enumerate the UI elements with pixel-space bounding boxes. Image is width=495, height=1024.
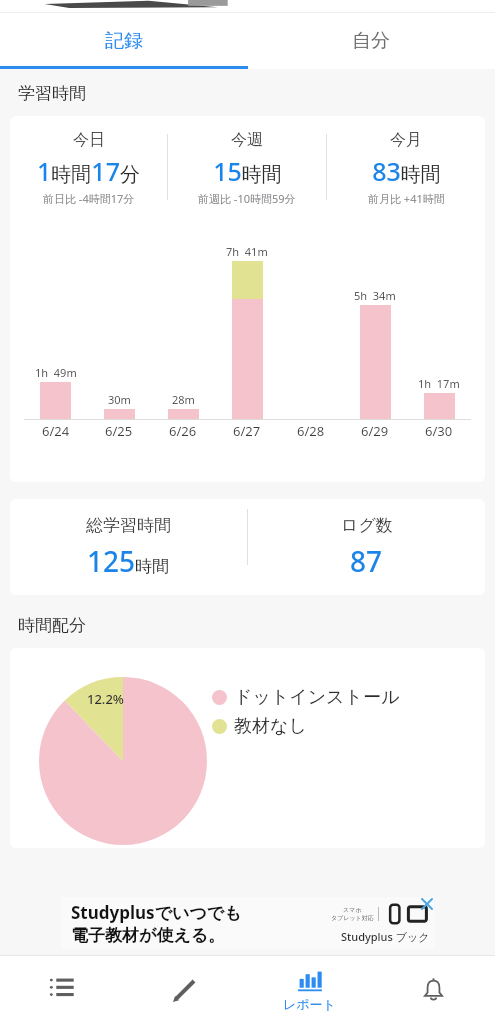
staticText: ドットインストール <box>234 686 400 709</box>
staticText: 今日 <box>73 130 105 150</box>
staticText: 1時間17分 <box>37 154 140 188</box>
staticText: レポート <box>283 996 336 1012</box>
staticText: 総学習時間 <box>86 515 171 536</box>
staticText: 自分 <box>352 29 390 53</box>
staticText: 87 <box>350 542 383 580</box>
staticText: 125時間 <box>87 542 170 580</box>
staticText: 6/27 <box>233 422 261 440</box>
staticText: 7h 41m <box>226 244 268 259</box>
staticText: 前月比 +41時間 <box>368 191 445 206</box>
button[interactable]: 自分 <box>247 13 495 69</box>
staticText: 1h 49m <box>35 365 77 380</box>
staticText: 12.2% <box>87 690 124 708</box>
staticText: スマホ <box>343 906 362 914</box>
button[interactable]: Studyplusでいつでも <box>61 897 434 949</box>
staticText: 学習時間 <box>18 83 86 104</box>
button[interactable]: お知らせ <box>371 956 495 1024</box>
staticText: 6/28 <box>297 422 325 440</box>
staticText: 前日比 -4時間17分 <box>43 191 135 206</box>
button[interactable]: Close ad <box>420 897 434 911</box>
staticText: タブレット対応 <box>331 914 374 922</box>
button[interactable]: レポート <box>247 956 371 1024</box>
button[interactable]: 記録リスト <box>0 956 123 1024</box>
button[interactable]: 記録 <box>0 13 247 69</box>
staticText: 今週 <box>231 130 263 150</box>
staticText: 教材なし <box>234 715 307 738</box>
staticText: 6/24 <box>42 422 70 440</box>
staticText: 28m <box>172 392 195 407</box>
staticText: 電子教材が使える。 <box>71 925 226 946</box>
staticText: 6/30 <box>425 422 453 440</box>
staticText: 15時間 <box>213 154 282 188</box>
staticText: Studyplusでいつでも <box>71 901 242 924</box>
staticText: 30m <box>108 392 131 407</box>
staticText: 5h 34m <box>354 288 396 303</box>
staticText: 記録 <box>105 29 143 53</box>
staticText: 6/29 <box>361 422 389 440</box>
staticText: 前週比 -10時間59分 <box>198 191 296 206</box>
staticText: 今月 <box>390 130 422 150</box>
staticText: 6/26 <box>169 422 197 440</box>
staticText: 83時間 <box>372 154 441 188</box>
staticText: ログ数 <box>341 515 393 536</box>
button[interactable]: 記録する <box>123 956 247 1024</box>
staticText: 時間配分 <box>18 615 86 636</box>
staticText: 1h 17m <box>418 376 460 391</box>
staticText: Studyplus ブック <box>341 929 430 944</box>
staticText: 6/25 <box>105 422 133 440</box>
